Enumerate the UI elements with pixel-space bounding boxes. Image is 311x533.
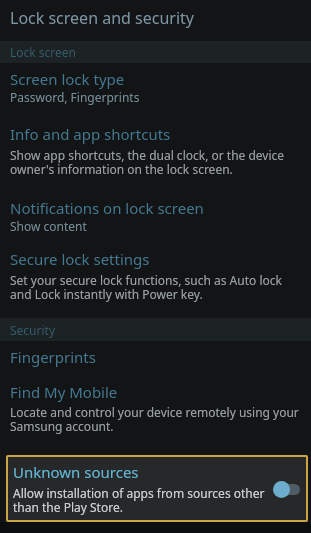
staticText: Screen lock type	[10, 69, 125, 89]
staticText: Lock screen and security	[10, 7, 194, 29]
button[interactable]: Find My Mobile	[0, 376, 311, 448]
button[interactable]: Fingerprints	[0, 341, 311, 376]
button[interactable]: Secure lock settings	[0, 243, 311, 318]
staticText: Allow installation of apps from sources …	[13, 485, 265, 516]
button[interactable]: Screen lock type	[0, 63, 311, 118]
staticText: Security	[10, 322, 56, 338]
staticText: Fingerprints	[10, 347, 96, 367]
staticText: Lock screen	[10, 44, 77, 60]
staticText: Unknown sources	[13, 462, 139, 482]
staticText: Info and app shortcuts	[10, 124, 171, 144]
button[interactable]: Notifications on lock screen	[0, 192, 311, 243]
staticText: Locate and control your device remotely …	[10, 404, 299, 435]
button[interactable]: Info and app shortcuts	[0, 118, 311, 192]
staticText: Find My Mobile	[10, 382, 118, 402]
staticText: Show app shortcuts, the dual clock, or t…	[10, 147, 285, 178]
staticText: Secure lock settings	[10, 249, 150, 269]
staticText: Show content	[10, 218, 87, 234]
staticText: Set your secure lock functions, such as …	[10, 272, 282, 303]
button[interactable]	[273, 480, 300, 498]
staticText: Password, Fingerprints	[10, 89, 140, 105]
staticText: Notifications on lock screen	[10, 198, 204, 218]
button[interactable]: Unknown sources	[6, 455, 308, 522]
